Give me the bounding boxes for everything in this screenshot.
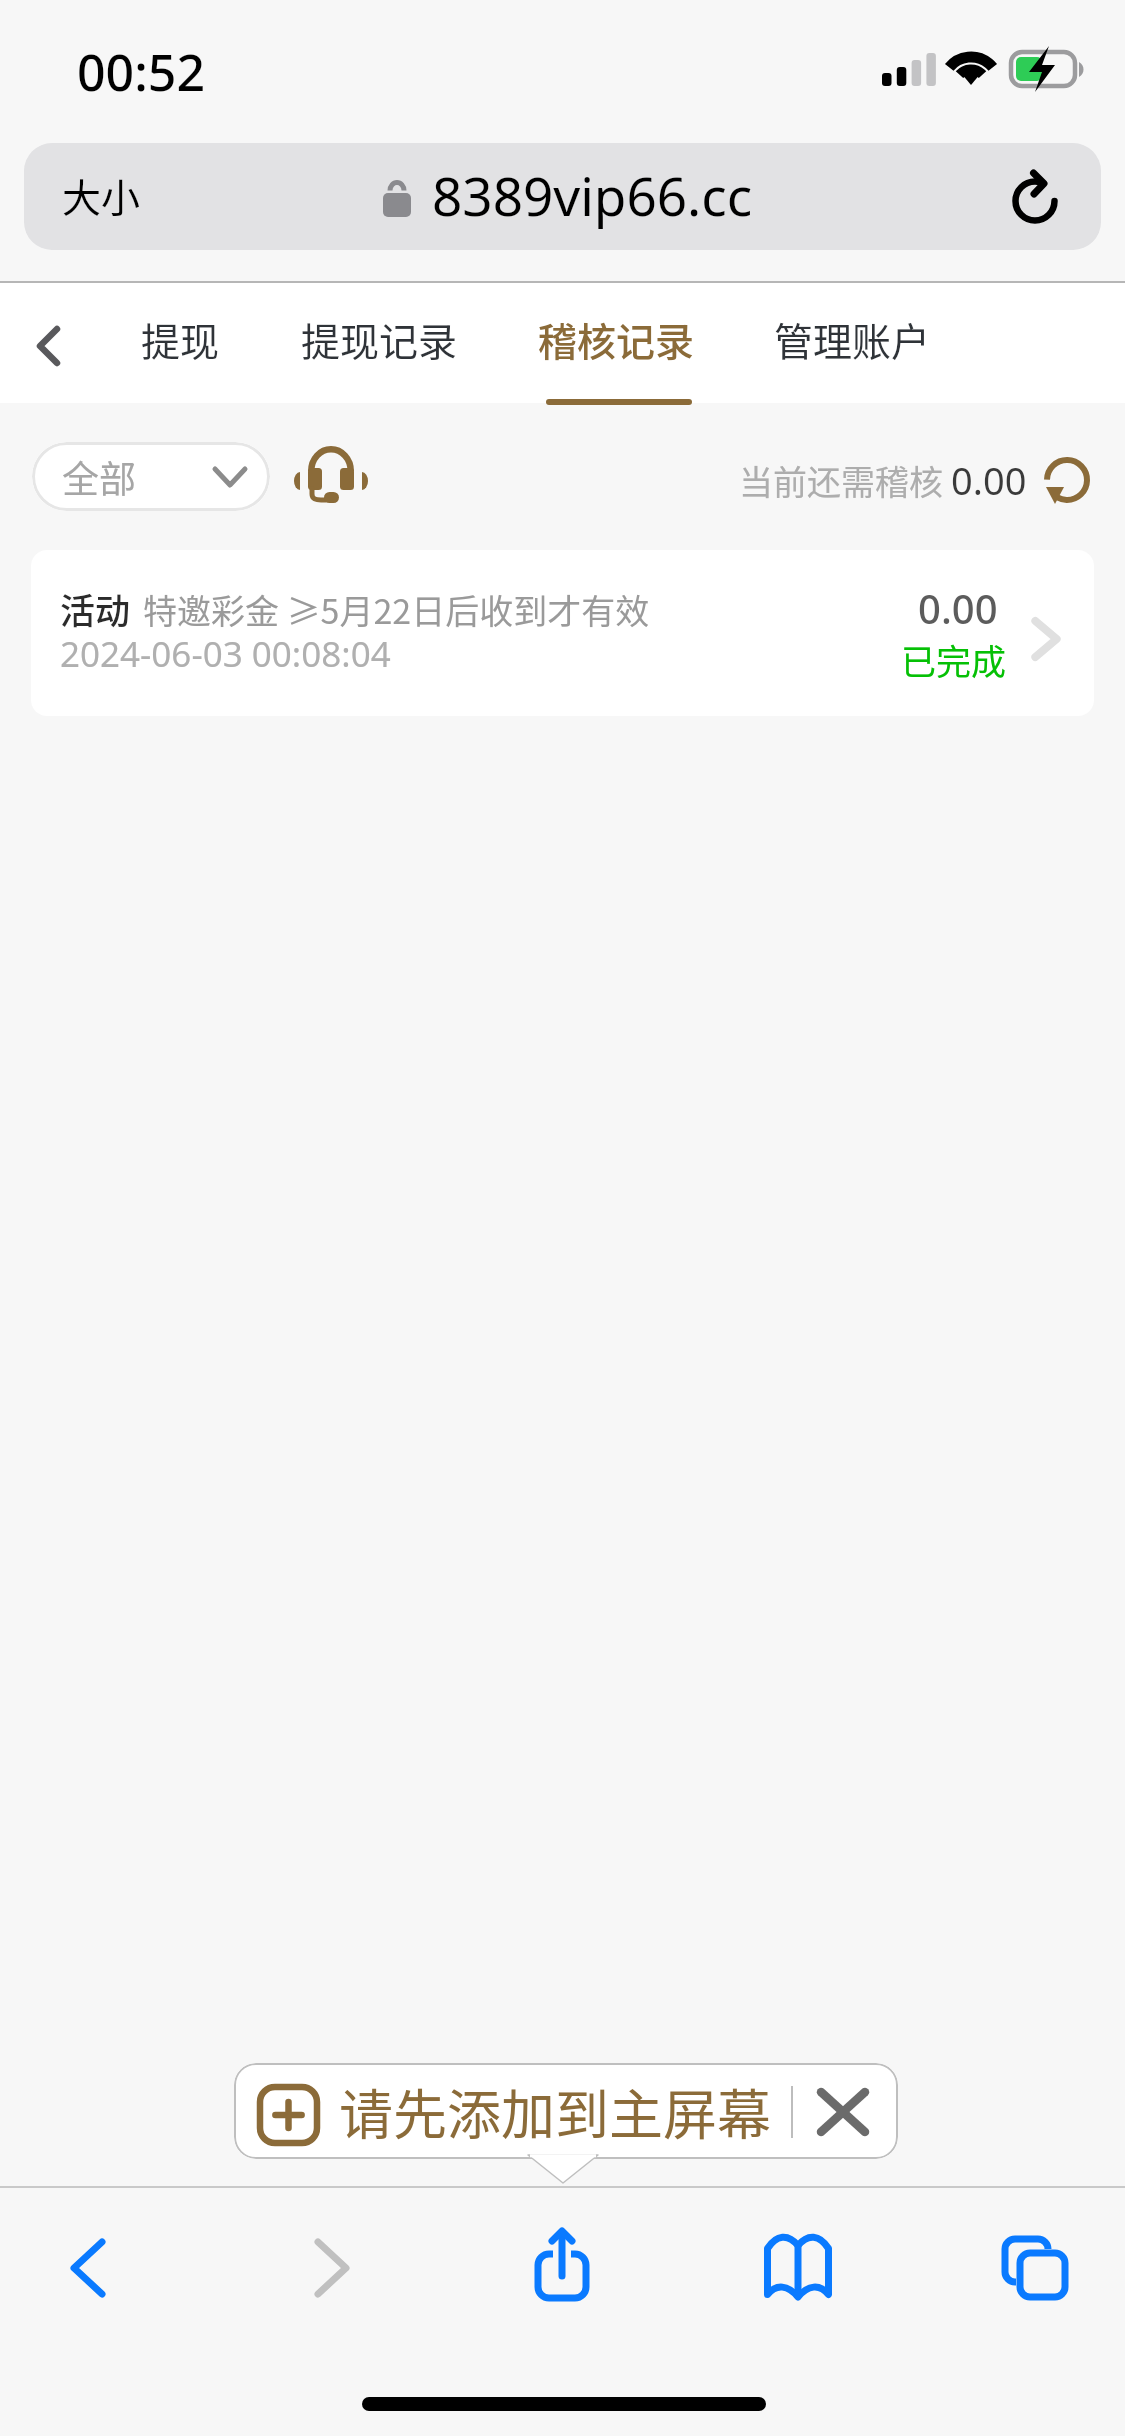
staticText: 0.00 bbox=[951, 454, 1027, 506]
button[interactable]: Tabs bbox=[977, 2212, 1093, 2328]
button[interactable]: 全部 bbox=[32, 442, 270, 511]
staticText: 提现记录 bbox=[301, 311, 458, 367]
button[interactable]: Forward bbox=[274, 2212, 390, 2328]
button[interactable]: Share bbox=[498, 2212, 614, 2328]
button[interactable]: 提现记录 bbox=[274, 283, 484, 395]
button[interactable]: Refresh bbox=[1038, 451, 1096, 509]
button[interactable]: Close bbox=[812, 2081, 874, 2143]
button[interactable]: Customer service bbox=[294, 441, 368, 511]
button[interactable]: Back bbox=[30, 2212, 146, 2328]
staticText: 2024-06-03 00:08:04 bbox=[60, 630, 391, 678]
staticText: 特邀彩金 ≥5月22日后收到才有效 bbox=[143, 585, 650, 634]
button[interactable]: 稽核记录 bbox=[511, 283, 721, 395]
button[interactable]: 大小 bbox=[24, 143, 1101, 250]
staticText: 大小 bbox=[62, 167, 141, 223]
staticText: 活动 bbox=[60, 583, 131, 634]
staticText: 已完成 bbox=[901, 634, 1007, 685]
button[interactable]: Reload bbox=[1000, 166, 1070, 236]
staticText: 全部 bbox=[62, 450, 136, 504]
button[interactable]: 提现 bbox=[120, 283, 240, 395]
button[interactable]: Back bbox=[2, 283, 94, 401]
staticText: 提现 bbox=[141, 311, 220, 367]
staticText: 请先添加到主屏幕 bbox=[339, 2072, 771, 2150]
button[interactable]: Bookmarks bbox=[740, 2212, 856, 2328]
staticText: 稽核记录 bbox=[538, 311, 695, 367]
staticText: 8389vip66.cc bbox=[432, 159, 753, 231]
staticText: 00:52 bbox=[77, 38, 205, 106]
staticText: 管理账户 bbox=[774, 311, 931, 367]
button[interactable]: 管理账户 bbox=[747, 283, 957, 395]
button[interactable]: 请先添加到主屏幕 bbox=[234, 2063, 898, 2159]
staticText: 0.00 bbox=[918, 581, 1001, 635]
button[interactable]: 活动 bbox=[31, 550, 1094, 716]
staticText: 当前还需稽核 bbox=[739, 456, 951, 505]
